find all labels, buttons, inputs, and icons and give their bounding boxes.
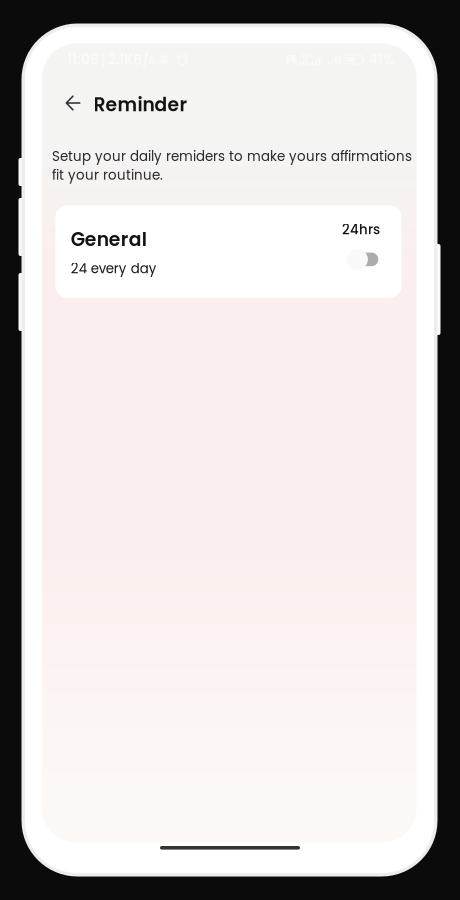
staticText: Setup your daily remiders to make yours … [52, 147, 412, 184]
staticText: 24 every day [71, 259, 157, 278]
staticText: 24hrs [342, 220, 380, 239]
button[interactable]: Back [58, 89, 88, 117]
staticText: General [71, 226, 147, 252]
staticText: Reminder [94, 92, 188, 118]
button[interactable]: General [55, 205, 401, 298]
